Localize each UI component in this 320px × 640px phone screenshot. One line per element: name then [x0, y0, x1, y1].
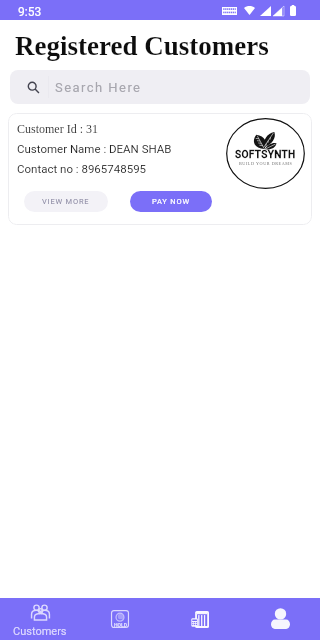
staticText: Registered Customers	[15, 31, 269, 61]
button[interactable]: Search Here	[10, 70, 310, 104]
button[interactable]: PAY NOW	[130, 191, 212, 212]
staticText: SOFTSYNTH	[235, 149, 296, 161]
staticText: HOLD	[114, 622, 127, 628]
staticText: 9:53	[18, 5, 42, 19]
staticText: Customers	[13, 625, 67, 638]
staticText: Contact no : 8965748595	[17, 162, 147, 175]
button[interactable]: Customers	[0, 598, 80, 640]
button[interactable]: VIEW MORE	[24, 191, 108, 212]
staticText: PAY NOW	[152, 197, 190, 206]
staticText: BUILD YOUR DREAMS	[239, 161, 293, 166]
staticText: Customer Name : DEAN SHAB	[17, 142, 172, 155]
button[interactable]: Reports	[160, 598, 240, 640]
staticText: Customer Id : 31	[17, 122, 98, 135]
button[interactable]: Hold	[80, 598, 160, 640]
button[interactable]: Profile	[240, 598, 320, 640]
staticText: Search Here	[55, 80, 142, 95]
staticText: VIEW MORE	[42, 197, 90, 206]
